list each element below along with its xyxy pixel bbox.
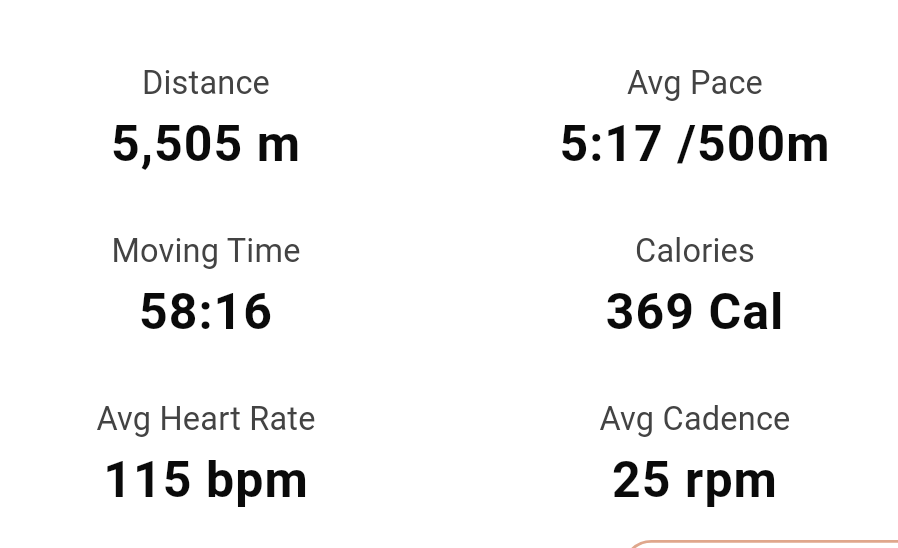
button[interactable]: Avg Pace [445,64,898,176]
staticText: Avg Heart Rate [0,400,456,438]
staticText: 5,505 m [0,115,456,174]
button[interactable]: Avg Cadence [445,400,898,512]
staticText: Avg Cadence [445,400,898,438]
staticText: 5:17 /500m [445,115,898,174]
staticText: Calories [445,232,898,270]
button[interactable]: Avg Heart Rate [0,400,456,512]
button[interactable]: Moving Time [0,232,456,344]
button[interactable]: Distance [0,64,456,176]
staticText: Avg Pace [445,64,898,102]
button[interactable]: Calories [445,232,898,344]
staticText: 58:16 [0,283,456,342]
button[interactable]: Save workout [622,540,898,548]
staticText: 115 bpm [0,451,456,510]
staticText: Moving Time [0,232,456,270]
staticText: 25 rpm [445,451,898,510]
staticText: 369 Cal [445,283,898,342]
staticText: Distance [0,64,456,102]
